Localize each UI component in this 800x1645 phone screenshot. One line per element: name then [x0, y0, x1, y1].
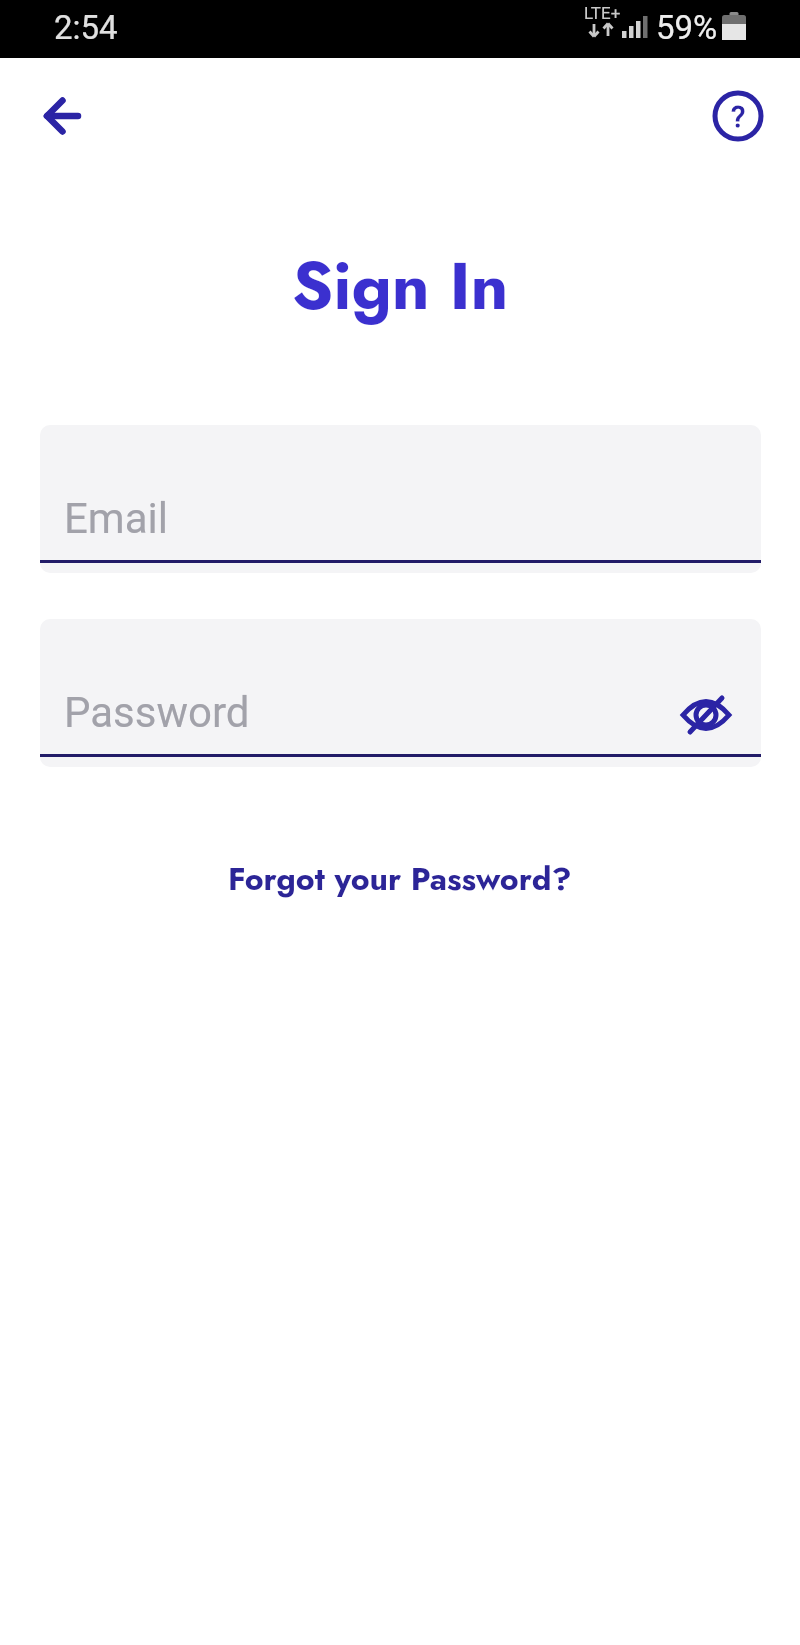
- button[interactable]: Email: [40, 425, 761, 573]
- button[interactable]: Password: [40, 619, 761, 767]
- button[interactable]: ?: [711, 89, 765, 143]
- staticText: Email: [64, 494, 168, 543]
- button[interactable]: Forgot your Password?: [228, 856, 572, 902]
- button[interactable]: [44, 97, 82, 135]
- staticText: ?: [731, 99, 746, 134]
- staticText: Forgot your Password?: [228, 856, 572, 902]
- staticText: Password: [64, 688, 250, 737]
- staticText: 59%: [656, 8, 718, 47]
- staticText: Sign In: [292, 238, 509, 333]
- staticText: LTE+: [584, 3, 621, 23]
- staticText: 2:54: [54, 8, 118, 47]
